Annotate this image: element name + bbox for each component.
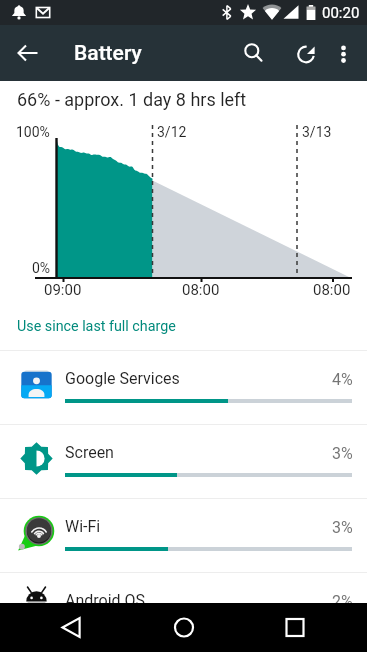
staticText: 00:20 (322, 4, 360, 22)
button[interactable]: Home (144, 603, 224, 652)
staticText: 3/13 (302, 124, 332, 140)
staticText: 66% - approx. 1 day 8 hrs left (17, 89, 247, 110)
staticText: 09:00 (44, 281, 82, 299)
button[interactable]: Use since last full charge (0, 310, 367, 350)
staticText: Use since last full charge (17, 318, 176, 335)
button[interactable]: Screen (0, 424, 367, 498)
staticText: 2% (332, 592, 353, 611)
staticText: Google Services (65, 369, 180, 388)
button[interactable]: Back (32, 603, 112, 652)
staticText: 100% (16, 124, 50, 140)
staticText: Android OS (65, 591, 146, 610)
staticText: 4% (332, 370, 353, 389)
staticText: Wi-Fi (65, 517, 101, 536)
button[interactable]: More options (320, 30, 366, 76)
staticText: Battery (74, 41, 142, 66)
button[interactable]: Google Services (0, 350, 367, 424)
button[interactable]: Refresh (283, 30, 329, 76)
button[interactable]: Android OS (0, 572, 367, 646)
staticText: Screen (65, 443, 114, 462)
staticText: 0% (32, 260, 51, 276)
staticText: 08:00 (313, 281, 351, 299)
button[interactable]: Wi-Fi (0, 498, 367, 572)
button[interactable]: Navigate up (8, 33, 48, 73)
button[interactable]: Search (231, 30, 277, 76)
staticText: 3% (332, 518, 353, 537)
button[interactable]: Recent apps (255, 603, 335, 652)
staticText: 3% (332, 444, 353, 463)
staticText: 3/12 (157, 124, 187, 140)
staticText: 08:00 (182, 281, 220, 299)
